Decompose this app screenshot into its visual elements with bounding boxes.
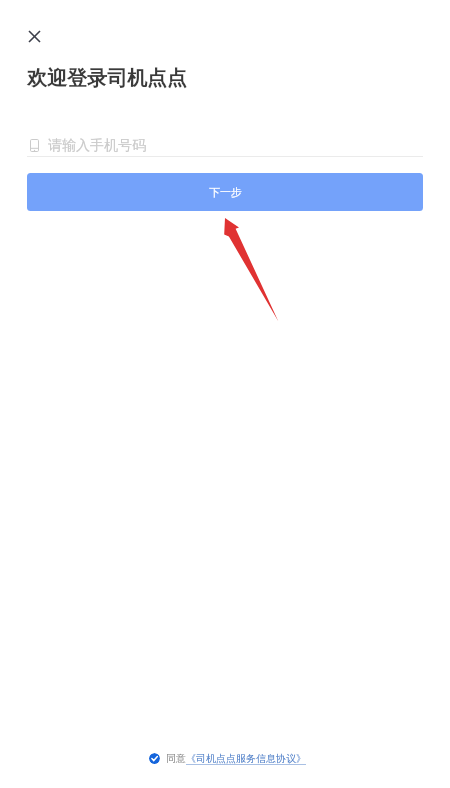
staticText: 同意 [166, 752, 186, 765]
staticText: 欢迎登录司机点点 [27, 66, 187, 91]
staticText: 下一步 [209, 185, 242, 199]
button[interactable]: 下一步 [27, 173, 423, 211]
button[interactable]: Agree checkbox, checked [149, 753, 160, 764]
button[interactable]: 《司机点点服务信息协议》 [186, 752, 306, 765]
staticText: 请输入手机号码 [48, 137, 146, 155]
button[interactable]: 请输入手机号码 [27, 133, 423, 159]
button[interactable]: Close [20, 22, 48, 50]
